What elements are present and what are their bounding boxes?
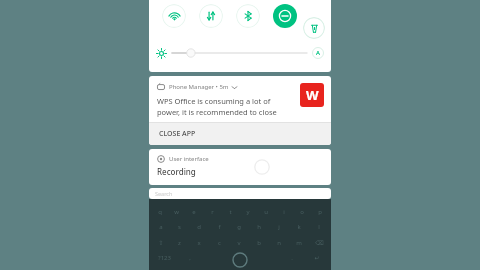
button[interactable]: ?123: [151, 252, 177, 263]
staticText: r: [211, 208, 214, 216]
staticText: Phone Manager • 5m: [169, 83, 229, 91]
staticText: Recording: [157, 166, 196, 177]
button[interactable]: h: [249, 221, 269, 232]
button[interactable]: k: [289, 221, 309, 232]
staticText: ⌫: [315, 239, 324, 246]
button[interactable]: ⌫: [309, 237, 329, 248]
button[interactable]: User interface: [149, 149, 331, 185]
button[interactable]: Phone Manager • 5m: [149, 76, 331, 122]
staticText: p: [318, 208, 322, 216]
staticText: q: [158, 208, 162, 216]
staticText: v: [237, 239, 241, 247]
button[interactable]: o: [293, 206, 311, 217]
button[interactable]: n: [269, 237, 289, 248]
staticText: ,: [189, 254, 191, 262]
button[interactable]: Flashlight: [303, 17, 325, 39]
button[interactable]: q: [151, 206, 168, 217]
button[interactable]: a: [151, 221, 170, 232]
staticText: WPS Office is consuming a lot of power, …: [157, 96, 277, 117]
button[interactable]: p: [311, 206, 329, 217]
staticText: s: [178, 223, 181, 231]
staticText: W: [306, 86, 319, 104]
staticText: b: [257, 239, 261, 247]
button[interactable]: Brightness: [172, 47, 307, 59]
button[interactable]: Stop recording: [254, 159, 270, 175]
staticText: Search: [155, 190, 173, 197]
button[interactable]: e: [185, 206, 203, 217]
button[interactable]: Search: [149, 188, 331, 199]
button[interactable]: Mobile data: [199, 4, 223, 28]
button[interactable]: d: [189, 221, 209, 232]
staticText: z: [178, 239, 181, 247]
button[interactable]: u: [257, 206, 275, 217]
button[interactable]: ↵: [304, 252, 329, 263]
button[interactable]: Do not disturb: [273, 4, 297, 28]
button[interactable]: Auto brightness: [312, 47, 324, 59]
button[interactable]: CLOSE APP: [149, 123, 331, 145]
staticText: w: [174, 208, 179, 216]
button[interactable]: m: [289, 237, 309, 248]
staticText: j: [278, 223, 280, 231]
button[interactable]: z: [170, 237, 189, 248]
staticText: g: [237, 223, 241, 231]
button[interactable]: [203, 252, 279, 263]
button[interactable]: f: [209, 221, 229, 232]
staticText: x: [197, 239, 201, 247]
staticText: CLOSE APP: [159, 129, 196, 139]
staticText: ⇧: [158, 239, 164, 246]
button[interactable]: Home: [232, 252, 248, 268]
button[interactable]: Wi-Fi: [162, 4, 186, 28]
staticText: User interface: [169, 155, 209, 163]
staticText: d: [197, 223, 201, 231]
staticText: f: [218, 223, 221, 231]
staticText: n: [277, 239, 281, 247]
button[interactable]: w: [168, 206, 185, 217]
button[interactable]: t: [221, 206, 239, 217]
staticText: l: [318, 223, 320, 231]
staticText: a: [159, 223, 163, 231]
staticText: y: [246, 208, 250, 216]
staticText: e: [192, 208, 196, 216]
staticText: m: [296, 239, 302, 247]
staticText: A: [316, 49, 320, 57]
staticText: o: [300, 208, 304, 216]
button[interactable]: Bluetooth: [236, 4, 260, 28]
staticText: ↵: [314, 254, 320, 261]
staticText: h: [257, 223, 261, 231]
button[interactable]: y: [239, 206, 257, 217]
staticText: t: [229, 208, 232, 216]
staticText: i: [283, 208, 285, 216]
button[interactable]: g: [229, 221, 249, 232]
staticText: k: [297, 223, 301, 231]
button[interactable]: b: [249, 237, 269, 248]
staticText: u: [264, 208, 268, 216]
staticText: c: [218, 239, 221, 247]
staticText: ?123: [158, 254, 171, 262]
